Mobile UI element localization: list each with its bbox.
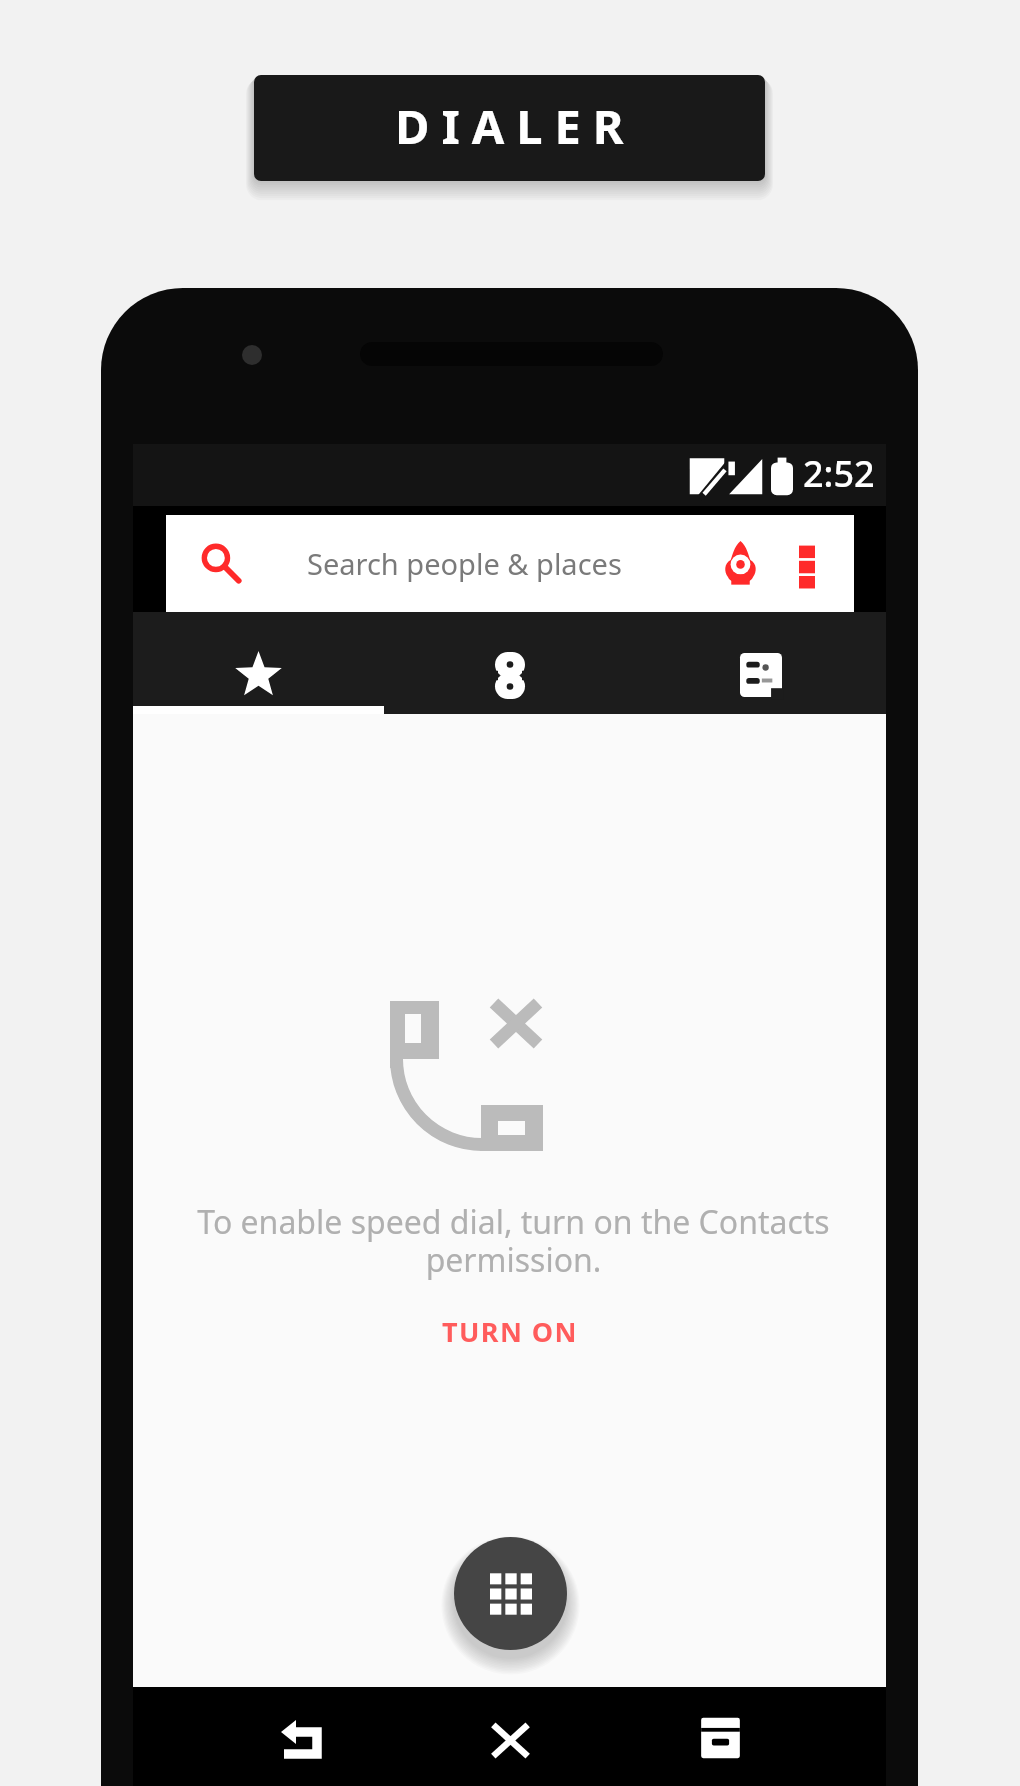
staticText: To enable speed dial, turn on the Contac… [189,1200,838,1281]
button[interactable]: Back [255,1687,348,1786]
button[interactable]: DIALER [254,75,765,181]
button[interactable]: Dialpad [454,1537,567,1650]
button[interactable]: TURN ON [428,1305,592,1358]
button[interactable]: Recent apps [674,1687,767,1786]
button[interactable]: Recents [384,612,635,714]
button[interactable]: Favorites [133,612,384,714]
button[interactable]: More options [778,515,836,612]
button[interactable]: Search people & places [166,515,854,612]
staticText: TURN ON [442,1313,578,1350]
button[interactable]: Search by location [702,515,778,612]
button[interactable]: Home [464,1687,557,1786]
staticText: 2:52 [803,449,875,498]
staticText: DIALER [395,94,636,158]
staticText: Search people & places [307,544,622,583]
button[interactable]: Contacts [635,612,886,714]
